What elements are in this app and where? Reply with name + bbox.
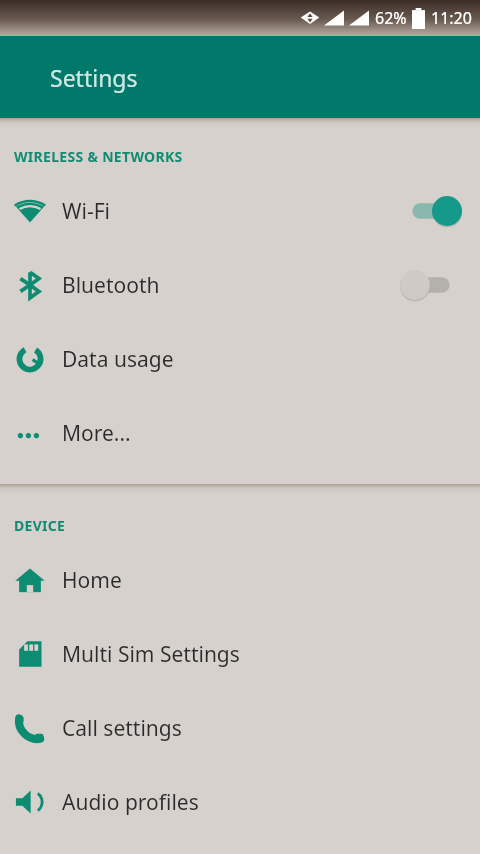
button[interactable]: Home (0, 543, 480, 617)
staticText: Data usage (62, 345, 462, 374)
button[interactable]: Toggle off (400, 268, 462, 302)
button[interactable]: Call settings (0, 691, 480, 765)
button[interactable]: Wi-Fi (0, 174, 480, 248)
button[interactable]: Bluetooth (0, 248, 480, 322)
button[interactable]: Multi Sim Settings (0, 617, 480, 691)
staticText: Call settings (62, 714, 462, 743)
button[interactable]: Audio profiles (0, 765, 480, 839)
staticText: Home (62, 566, 462, 595)
staticText: Settings (50, 62, 138, 93)
staticText: Audio profiles (62, 788, 462, 817)
staticText: 62% (375, 7, 407, 29)
staticText: WIRELESS & NETWORKS (14, 147, 183, 166)
staticText: DEVICE (14, 516, 66, 535)
staticText: Multi Sim Settings (62, 640, 462, 669)
button[interactable]: Data usage (0, 322, 480, 396)
staticText: Bluetooth (62, 271, 400, 300)
button[interactable]: More... (0, 396, 480, 470)
staticText: More... (62, 419, 462, 448)
staticText: Wi-Fi (62, 197, 400, 226)
staticText: 11:20 (431, 7, 472, 29)
button[interactable]: Toggle on (400, 194, 462, 228)
